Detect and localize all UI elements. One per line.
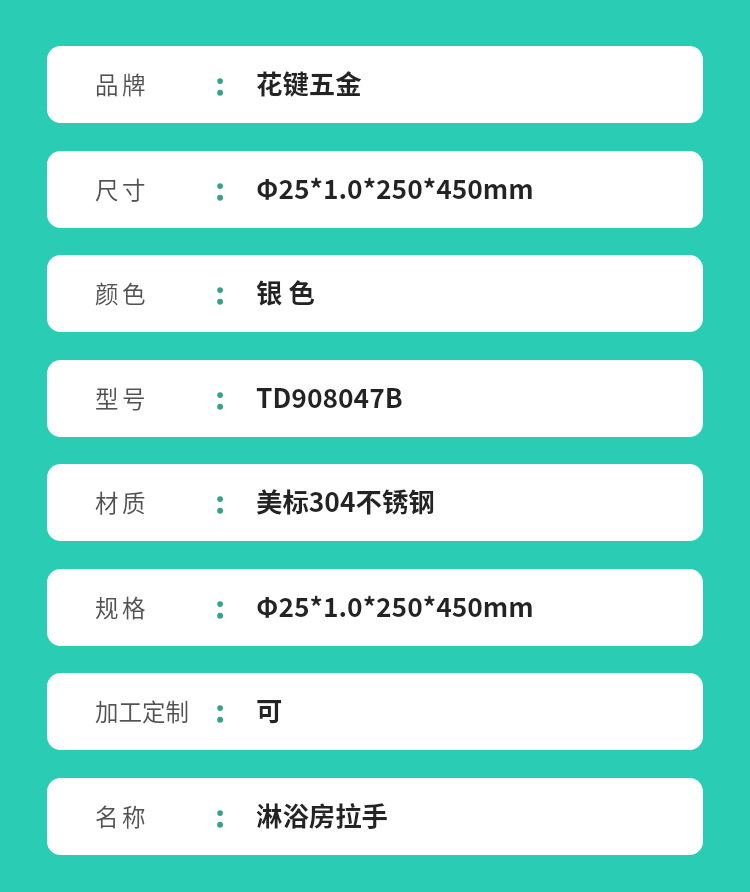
staticText: TD908047B (256, 377, 403, 415)
button[interactable]: 加工定制: 可 (47, 673, 703, 750)
staticText: 美标304不锈钢 (256, 481, 435, 519)
staticText: 淋浴房拉手 (256, 795, 388, 833)
staticText: 花键五金 (256, 63, 362, 101)
staticText: 规格 (95, 590, 149, 624)
staticText: 型号 (95, 381, 149, 415)
staticText: Φ25*1.0*250*450mm (256, 168, 534, 206)
staticText: 材质 (95, 485, 149, 519)
staticText: 名称 (95, 799, 149, 833)
staticText: 品牌 (95, 67, 149, 101)
staticText: 颜色 (95, 276, 149, 310)
staticText: 尺寸 (95, 172, 149, 206)
staticText: 银 色 (256, 272, 315, 310)
button[interactable]: 品牌: 花键五金 (47, 46, 703, 123)
button[interactable]: 名称: 淋浴房拉手 (47, 778, 703, 855)
button[interactable]: 颜色: 银 色 (47, 255, 703, 332)
button[interactable]: 材质: 美标304不锈钢 (47, 464, 703, 541)
staticText: 加工定制 (95, 694, 189, 728)
button[interactable]: 规格: Φ25*1.0*250*450mm (47, 569, 703, 646)
staticText: Φ25*1.0*250*450mm (256, 586, 534, 624)
staticText: 可 (256, 690, 283, 728)
button[interactable]: 尺寸: Φ25*1.0*250*450mm (47, 151, 703, 228)
button[interactable]: 型号: TD908047B (47, 360, 703, 437)
